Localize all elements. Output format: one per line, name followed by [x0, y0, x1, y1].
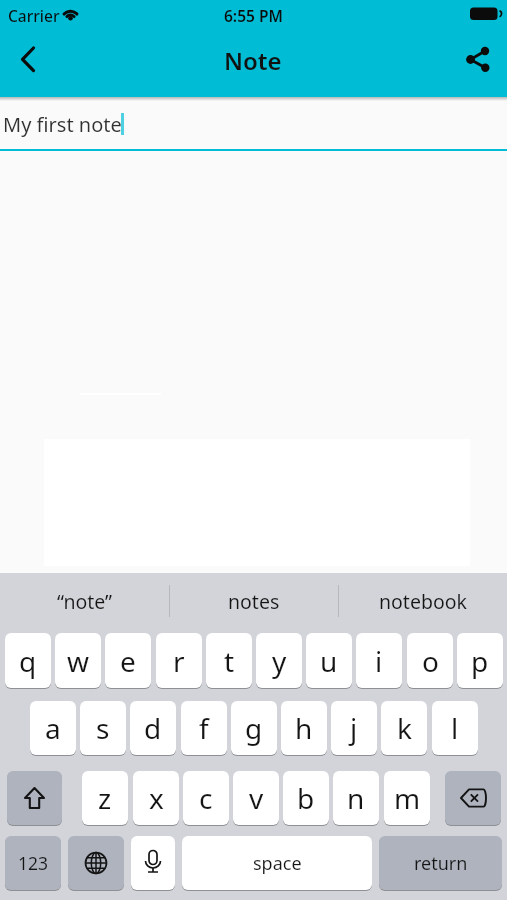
staticText: t: [224, 642, 235, 680]
button[interactable]: s: [80, 701, 126, 755]
staticText: 123: [18, 851, 49, 875]
staticText: p: [471, 642, 489, 680]
button[interactable]: i: [356, 633, 402, 688]
staticText: l: [451, 709, 459, 747]
button[interactable]: l: [432, 701, 478, 755]
staticText: My first note: [3, 111, 122, 138]
button[interactable]: f: [181, 701, 227, 755]
button[interactable]: 123: [5, 836, 61, 890]
button[interactable]: c: [183, 771, 229, 825]
staticText: q: [19, 642, 37, 680]
staticText: i: [375, 642, 383, 680]
staticText: z: [98, 779, 112, 817]
staticText: r: [173, 642, 185, 680]
staticText: e: [120, 642, 136, 680]
staticText: s: [96, 709, 110, 747]
staticText: space: [253, 851, 302, 876]
staticText: j: [350, 709, 358, 747]
button[interactable]: [8, 45, 50, 75]
button[interactable]: x: [133, 771, 179, 825]
button[interactable]: a: [30, 701, 76, 755]
button[interactable]: [460, 42, 500, 78]
button[interactable]: j: [331, 701, 377, 755]
staticText: w: [67, 642, 90, 680]
staticText: Note: [224, 44, 282, 76]
button[interactable]: return: [379, 836, 502, 890]
button[interactable]: [68, 836, 124, 890]
button[interactable]: n: [333, 771, 379, 825]
staticText: u: [320, 642, 338, 680]
staticText: o: [422, 642, 439, 680]
button[interactable]: d: [130, 701, 176, 755]
button[interactable]: w: [55, 633, 101, 688]
staticText: n: [347, 779, 365, 817]
staticText: m: [394, 779, 421, 817]
staticText: notebook: [379, 588, 467, 615]
staticText: v: [249, 779, 264, 817]
button[interactable]: o: [407, 633, 453, 688]
button[interactable]: [7, 771, 62, 825]
staticText: k: [397, 709, 412, 747]
button[interactable]: [131, 836, 175, 890]
button[interactable]: v: [233, 771, 279, 825]
staticText: Carrier: [8, 5, 60, 26]
staticText: c: [199, 779, 213, 817]
button[interactable]: q: [5, 633, 51, 688]
staticText: x: [149, 779, 164, 817]
button[interactable]: h: [281, 701, 327, 755]
staticText: g: [245, 709, 263, 747]
button[interactable]: r: [156, 633, 202, 688]
button[interactable]: z: [82, 771, 128, 825]
staticText: a: [45, 709, 61, 747]
button[interactable]: e: [105, 633, 151, 688]
button[interactable]: g: [231, 701, 277, 755]
button[interactable]: b: [283, 771, 329, 825]
button[interactable]: [445, 771, 501, 825]
staticText: b: [297, 779, 315, 817]
button[interactable]: p: [457, 633, 503, 688]
staticText: 6:55 PM: [224, 5, 283, 26]
staticText: h: [295, 709, 313, 747]
button[interactable]: y: [256, 633, 302, 688]
staticText: notes: [228, 588, 280, 615]
button[interactable]: k: [381, 701, 427, 755]
button[interactable]: m: [384, 771, 430, 825]
button[interactable]: u: [306, 633, 352, 688]
staticText: y: [272, 642, 287, 680]
staticText: f: [199, 709, 209, 747]
staticText: return: [414, 851, 468, 876]
button[interactable]: space: [182, 836, 372, 890]
button[interactable]: t: [206, 633, 252, 688]
staticText: d: [144, 709, 162, 747]
staticText: “note”: [57, 588, 113, 615]
